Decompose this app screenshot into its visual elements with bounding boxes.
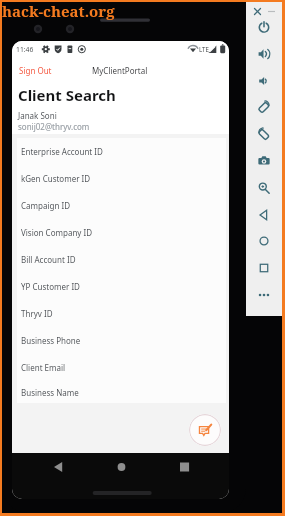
button[interactable]: YP Customer ID: [17, 273, 226, 300]
button[interactable]: Zoom: [255, 179, 273, 197]
staticText: Bill Account ID: [21, 254, 76, 265]
button[interactable]: Rotate left: [255, 98, 273, 116]
button[interactable]: Volume down: [255, 72, 273, 90]
button[interactable]: Home: [107, 453, 135, 481]
staticText: 11:46: [16, 45, 34, 54]
button[interactable]: Minimize: [265, 5, 277, 17]
button[interactable]: Recents: [255, 259, 273, 277]
button[interactable]: Campaign ID: [17, 192, 226, 219]
button[interactable]: More options: [255, 286, 273, 304]
button[interactable]: Bill Account ID: [17, 246, 226, 273]
button[interactable]: Home: [255, 232, 273, 250]
button[interactable]: Back: [255, 206, 273, 224]
staticText: MyClientPortal: [92, 65, 148, 76]
staticText: Client Email: [21, 362, 66, 373]
staticText: Client Search: [18, 85, 116, 105]
button[interactable]: Compose feedback: [189, 414, 221, 446]
staticText: Thryv ID: [21, 308, 53, 319]
button[interactable]: Business Phone: [17, 327, 226, 354]
button[interactable]: kGen Customer ID: [17, 165, 226, 192]
button[interactable]: Recents: [170, 453, 198, 481]
staticText: Enterprise Account ID: [21, 146, 103, 157]
button[interactable]: Close: [251, 5, 263, 17]
staticText: Business Name: [21, 387, 79, 398]
button[interactable]: Power: [255, 18, 273, 36]
staticText: LTE: [199, 45, 209, 53]
staticText: Vision Company ID: [21, 227, 93, 238]
staticText: Janak Soni: [18, 110, 57, 121]
staticText: sonij02@thryv.com: [18, 121, 90, 132]
button[interactable]: Take screenshot: [255, 152, 273, 170]
staticText: kGen Customer ID: [21, 173, 91, 184]
staticText: Sign Out: [19, 65, 52, 76]
button[interactable]: Rotate right: [255, 125, 273, 143]
button[interactable]: Client Email: [17, 354, 226, 381]
button[interactable]: Enterprise Account ID: [17, 138, 226, 165]
staticText: Campaign ID: [21, 200, 70, 211]
button[interactable]: Sign Out: [14, 61, 57, 80]
staticText: Business Phone: [21, 335, 81, 346]
button[interactable]: Thryv ID: [17, 300, 226, 327]
button[interactable]: Back: [44, 453, 72, 481]
button[interactable]: Volume up: [255, 45, 273, 63]
button[interactable]: Vision Company ID: [17, 219, 226, 246]
staticText: YP Customer ID: [21, 281, 80, 292]
button[interactable]: Business Name: [17, 381, 226, 403]
staticText: hack-cheat.org: [2, 1, 115, 21]
